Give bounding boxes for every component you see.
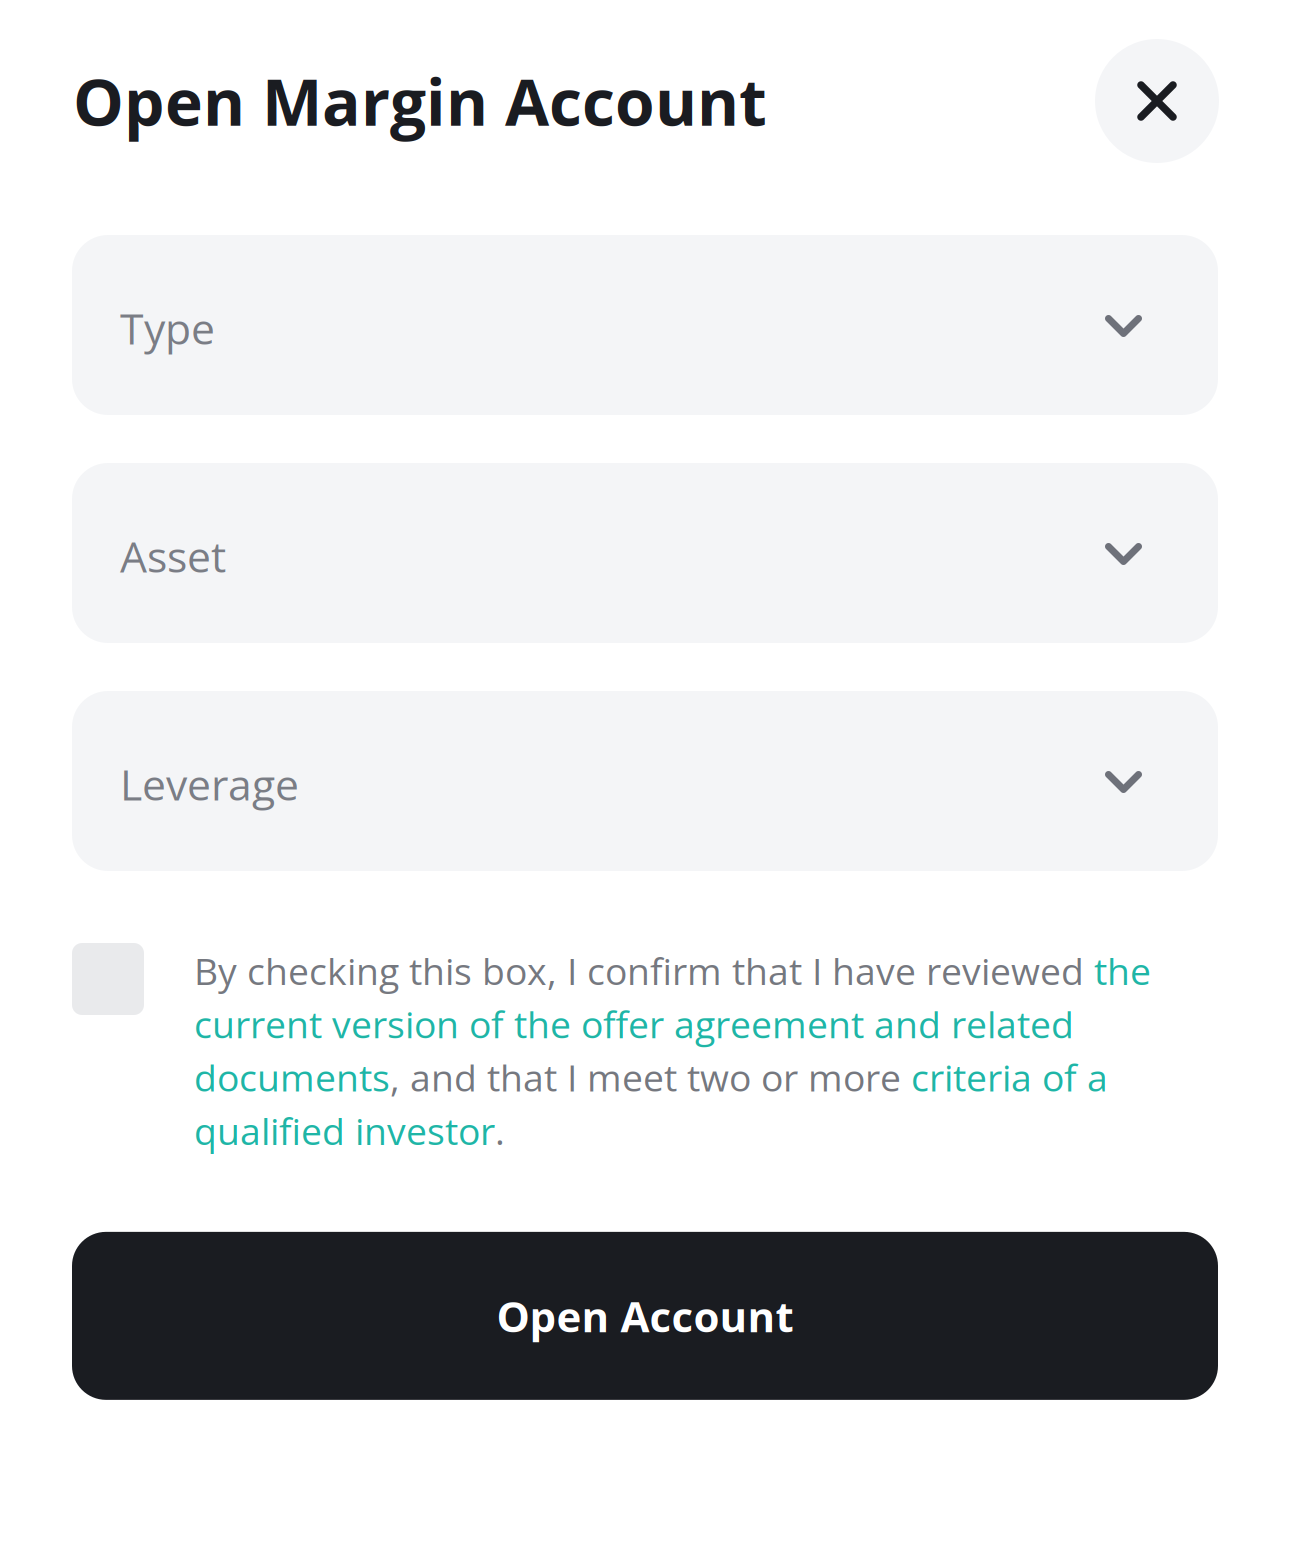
staticText: Type bbox=[120, 299, 215, 357]
button[interactable]: Asset bbox=[72, 463, 1218, 643]
staticText: By checking this box, I confirm that I h… bbox=[194, 945, 1151, 1156]
button[interactable]: Type bbox=[72, 235, 1218, 415]
button[interactable]: Leverage bbox=[72, 691, 1218, 871]
staticText: Open Account bbox=[496, 1287, 793, 1344]
button[interactable]: Open Account bbox=[72, 1232, 1218, 1400]
staticText: Leverage bbox=[120, 755, 299, 813]
button[interactable]: Close bbox=[1095, 39, 1219, 163]
staticText: Open Margin Account bbox=[73, 57, 767, 145]
staticText: Asset bbox=[120, 527, 226, 585]
